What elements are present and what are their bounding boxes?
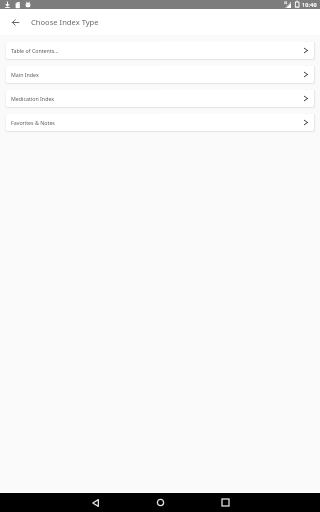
- button[interactable]: Recent apps: [215, 493, 235, 512]
- staticText: Table of Contents…: [11, 47, 59, 54]
- staticText: Choose Index Type: [31, 17, 99, 27]
- staticText: Main Index: [11, 71, 39, 78]
- button[interactable]: Main Index: [6, 66, 314, 83]
- staticText: Favorites & Notes: [11, 119, 55, 126]
- button[interactable]: Back: [0, 9, 30, 35]
- staticText: Medication Index: [11, 95, 55, 102]
- button[interactable]: Favorites & Notes: [6, 114, 314, 131]
- button[interactable]: Table of Contents…: [6, 42, 314, 59]
- button[interactable]: Back: [85, 493, 105, 512]
- button[interactable]: Medication Index: [6, 90, 314, 107]
- staticText: 10:40: [302, 1, 317, 8]
- button[interactable]: Home: [150, 493, 170, 512]
